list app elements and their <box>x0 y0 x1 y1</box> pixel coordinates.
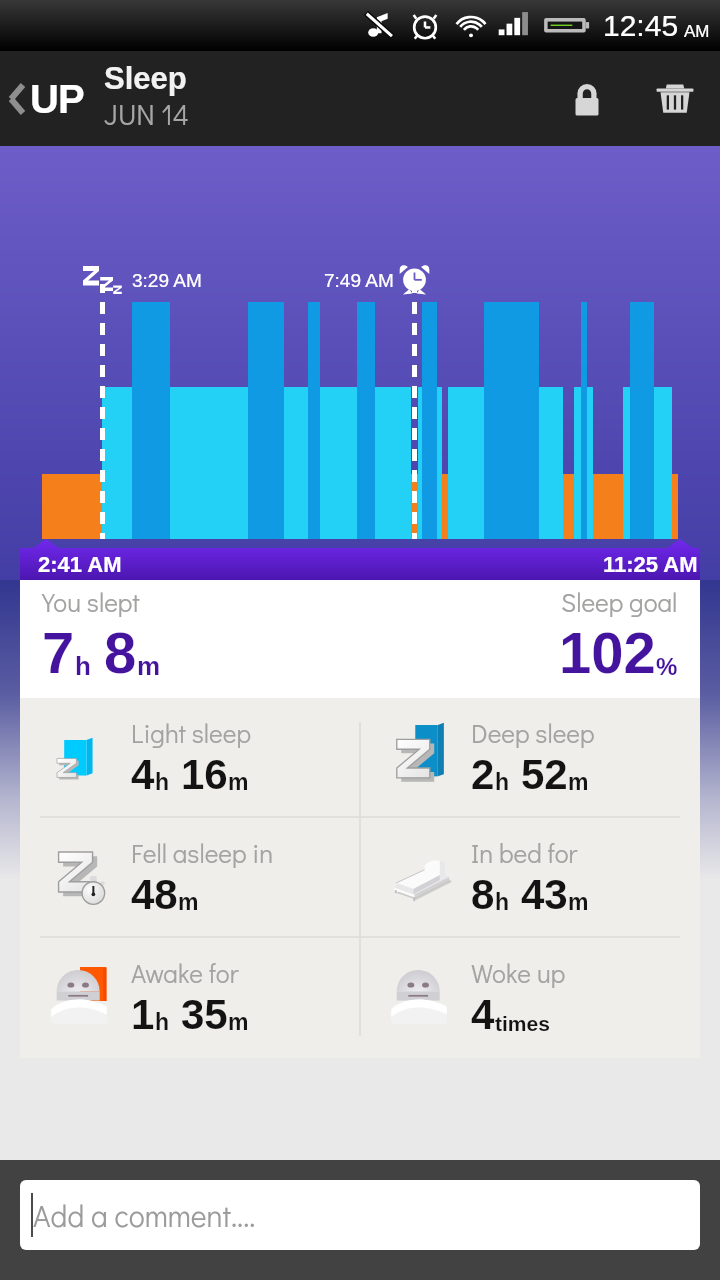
staticText: 52 <box>521 751 568 798</box>
staticText: times <box>495 1012 550 1035</box>
staticText: 8 <box>471 871 495 918</box>
staticText: 1 <box>131 991 155 1038</box>
staticText: 4 <box>471 991 495 1038</box>
staticText: m <box>568 889 589 915</box>
staticText: 102 <box>559 620 656 685</box>
staticText: You slept <box>42 585 140 619</box>
staticText: h <box>495 889 510 915</box>
button[interactable]: Light sleep <box>20 698 360 818</box>
staticText: m <box>568 769 589 795</box>
staticText: Sleep <box>104 61 187 96</box>
staticText: Add a comment.... <box>33 1196 256 1235</box>
staticText: Deep sleep <box>471 716 595 750</box>
staticText: 4 <box>131 751 155 798</box>
staticText: Light sleep <box>131 716 251 750</box>
button[interactable]: Deep sleep <box>360 698 700 818</box>
staticText: m <box>228 1009 249 1035</box>
button[interactable]: Add a comment.... <box>20 1180 700 1250</box>
staticText: h <box>155 769 170 795</box>
staticText: h <box>75 651 91 680</box>
staticText: Sleep goal <box>561 585 678 619</box>
staticText: h <box>155 1009 170 1035</box>
button[interactable]: Fell asleep in <box>20 818 360 938</box>
staticText: h <box>495 769 510 795</box>
button[interactable]: Woke up <box>360 938 700 1058</box>
staticText: 35 <box>181 991 228 1038</box>
staticText: m <box>178 889 199 915</box>
button[interactable]: Back <box>0 63 189 135</box>
staticText: 8 <box>104 620 137 685</box>
button[interactable]: Awake for <box>20 938 360 1058</box>
staticText: UP <box>30 77 84 122</box>
button[interactable]: Lock <box>544 51 630 146</box>
staticText: Woke up <box>471 956 566 990</box>
staticText: 16 <box>181 751 228 798</box>
staticText: Awake for <box>131 956 239 990</box>
staticText: 7:49 AM <box>324 270 394 291</box>
staticText: JUN 14 <box>104 96 189 133</box>
staticText: In bed for <box>471 836 578 870</box>
staticText: 2:41 AM <box>38 552 122 577</box>
staticText: 2 <box>471 751 495 798</box>
staticText: 43 <box>521 871 568 918</box>
staticText: AM <box>684 22 710 41</box>
staticText: m <box>228 769 249 795</box>
staticText: 11:25 AM <box>603 552 698 577</box>
staticText: % <box>656 653 678 680</box>
staticText: Fell asleep in <box>131 836 274 870</box>
other: Back <box>0 72 30 126</box>
button[interactable]: Delete <box>630 51 720 146</box>
staticText: 3:29 AM <box>132 270 202 291</box>
button[interactable]: In bed for <box>360 818 700 938</box>
staticText: 7 <box>42 620 75 685</box>
staticText: m <box>137 651 161 680</box>
staticText: 12:45 <box>603 9 679 43</box>
staticText: 48 <box>131 871 178 918</box>
